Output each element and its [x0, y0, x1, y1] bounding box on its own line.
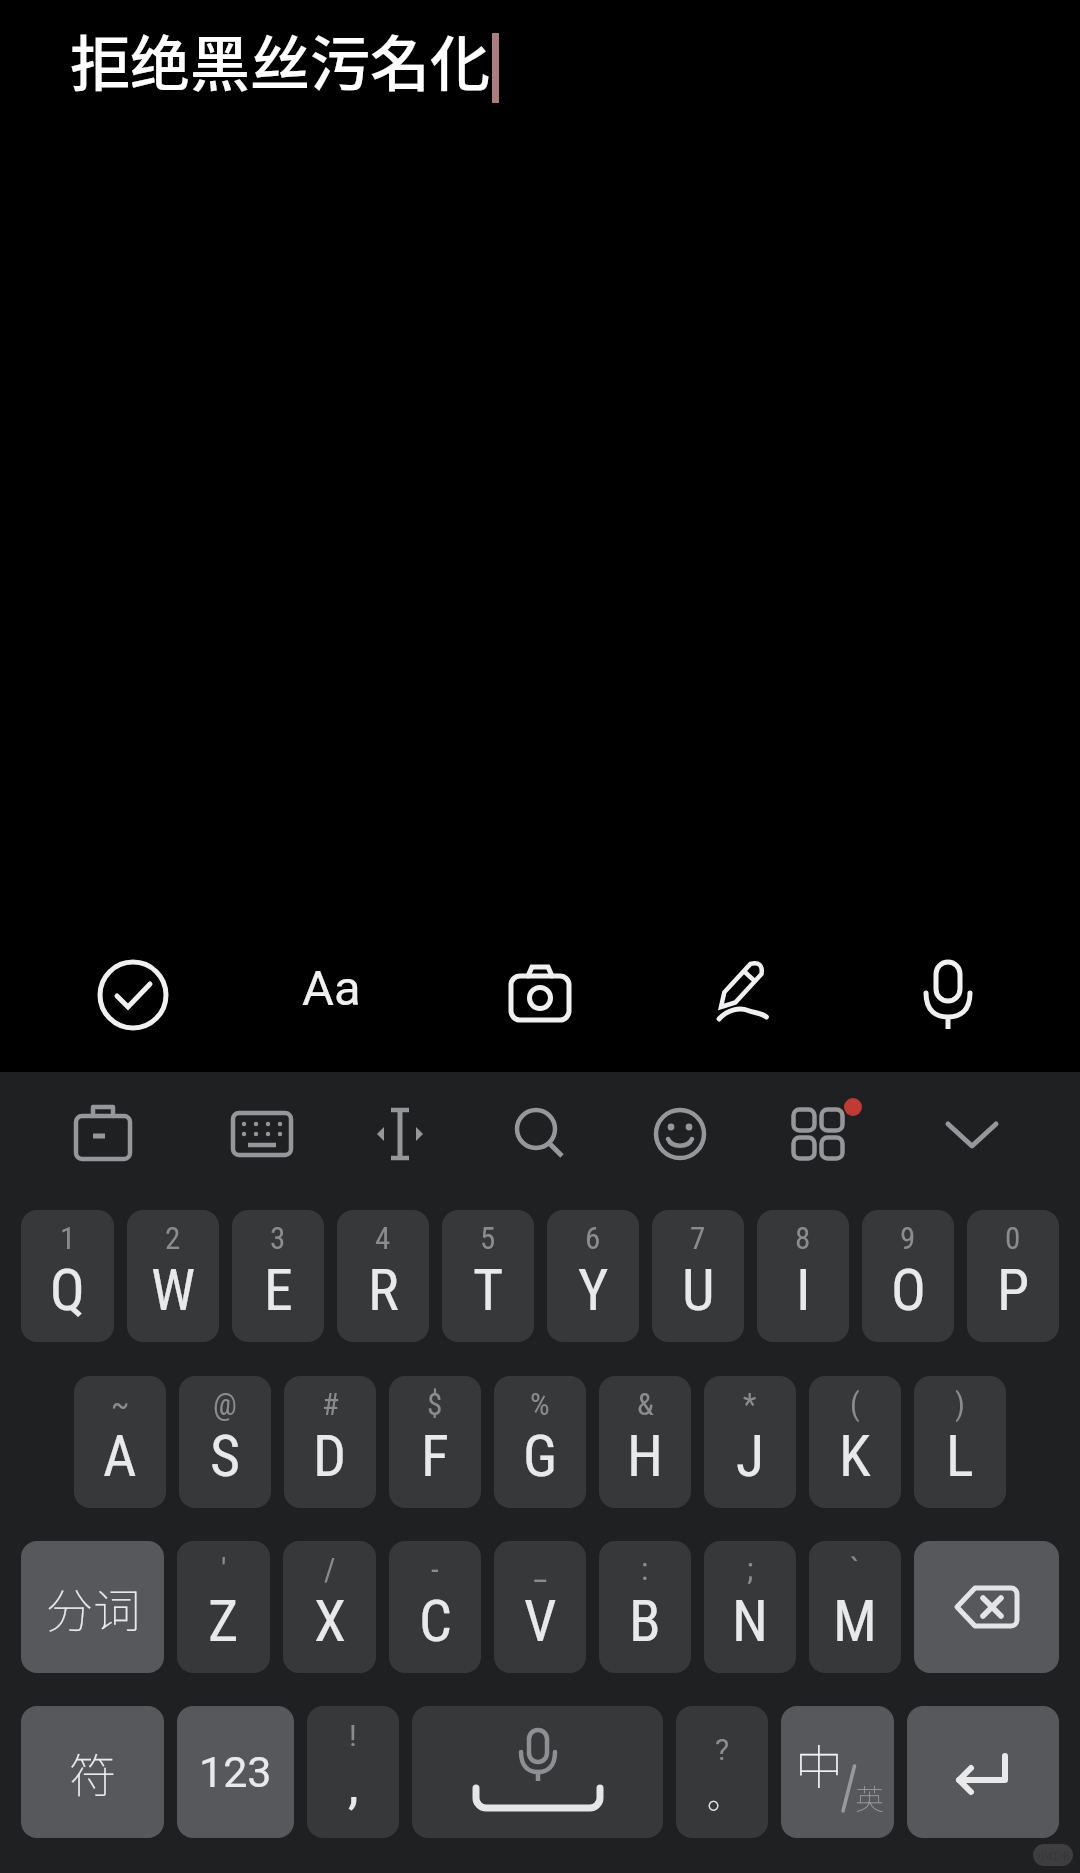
staticText: Q [50, 1256, 85, 1324]
button[interactable]: $ [389, 1376, 481, 1508]
button[interactable]: % [494, 1376, 586, 1508]
button[interactable]: 3 [232, 1210, 324, 1342]
button[interactable] [412, 1706, 663, 1838]
button[interactable]: ) [914, 1376, 1006, 1508]
staticText: 4 [375, 1220, 391, 1256]
staticText: V [524, 1587, 557, 1655]
staticText: / [324, 1551, 336, 1587]
staticText: ) [955, 1386, 965, 1422]
button[interactable] [485, 940, 595, 1050]
button[interactable]: - [389, 1541, 481, 1673]
staticText: ~ [111, 1386, 130, 1422]
staticText: 0 [1005, 1220, 1021, 1256]
button[interactable] [352, 1086, 448, 1182]
staticText: 符 [69, 1738, 116, 1806]
button[interactable] [492, 1086, 588, 1182]
staticText: : [641, 1551, 649, 1587]
staticText: Y [578, 1256, 609, 1324]
button[interactable]: : [599, 1541, 691, 1673]
staticText: M [833, 1587, 877, 1655]
button[interactable] [632, 1086, 728, 1182]
button[interactable]: ( [809, 1376, 901, 1508]
button[interactable]: 符 [21, 1706, 164, 1838]
staticText: 9 [900, 1220, 916, 1256]
staticText: % [530, 1386, 550, 1422]
staticText: * [743, 1386, 757, 1422]
staticText: 6 [585, 1220, 601, 1256]
staticText: , [348, 1753, 359, 1816]
button[interactable]: & [599, 1376, 691, 1508]
button[interactable]: @ [179, 1376, 271, 1508]
button[interactable]: 2 [127, 1210, 219, 1342]
button[interactable]: # [284, 1376, 376, 1508]
staticText: Aa [302, 960, 361, 1017]
button[interactable]: 中 [781, 1706, 894, 1838]
staticText: & [637, 1386, 654, 1422]
staticText: X [314, 1587, 346, 1655]
staticText: K [839, 1422, 871, 1490]
staticText: P [997, 1256, 1030, 1324]
button[interactable] [924, 1086, 1020, 1182]
button[interactable]: 8 [757, 1210, 849, 1342]
button[interactable]: _ [494, 1541, 586, 1673]
button[interactable]: 123 [177, 1706, 294, 1838]
button[interactable]: 1 [21, 1210, 114, 1342]
staticText: W [151, 1256, 196, 1324]
staticText: - [431, 1551, 439, 1587]
button[interactable]: 分词 [21, 1541, 164, 1673]
button[interactable]: 7 [652, 1210, 744, 1342]
staticText: G [523, 1422, 558, 1490]
staticText: ; [747, 1551, 754, 1587]
staticText: # [322, 1386, 339, 1422]
button[interactable]: ' [177, 1541, 270, 1673]
button[interactable] [214, 1086, 310, 1182]
button[interactable] [78, 940, 188, 1050]
staticText: R [368, 1256, 399, 1324]
staticText: H [627, 1422, 663, 1490]
staticText: ' [221, 1551, 227, 1587]
button[interactable]: * [704, 1376, 796, 1508]
button[interactable] [770, 1086, 866, 1182]
button[interactable]: 4 [337, 1210, 429, 1342]
staticText: 5 [480, 1220, 496, 1256]
staticText: J [736, 1422, 765, 1490]
button[interactable]: 5 [442, 1210, 534, 1342]
button[interactable] [55, 1086, 151, 1182]
staticText: 7 [690, 1220, 706, 1256]
staticText: ? [715, 1732, 730, 1767]
button[interactable] [907, 1706, 1059, 1838]
staticText: U [682, 1256, 715, 1324]
staticText: L [946, 1422, 974, 1490]
staticText: 。 [707, 1770, 741, 1819]
button[interactable] [914, 1541, 1059, 1673]
staticText: T [473, 1256, 504, 1324]
staticText: 123 [199, 1747, 272, 1797]
staticText: 8 [795, 1220, 811, 1256]
staticText: A [103, 1422, 137, 1490]
button[interactable]: ` [809, 1541, 901, 1673]
button[interactable]: ~ [74, 1376, 166, 1508]
staticText: 3 [270, 1220, 286, 1256]
button[interactable]: ? [676, 1706, 768, 1838]
button[interactable]: / [283, 1541, 376, 1673]
button[interactable]: 6 [547, 1210, 639, 1342]
button[interactable]: 0 [967, 1210, 1059, 1342]
staticText: 拒绝黑丝污名化 [70, 16, 490, 103]
button[interactable] [690, 940, 800, 1050]
staticText: ( [850, 1386, 860, 1422]
button[interactable] [893, 940, 1003, 1050]
staticText: C [419, 1587, 452, 1655]
staticText: 分词 [46, 1573, 140, 1641]
button[interactable]: ; [704, 1541, 796, 1673]
button[interactable]: ! [307, 1706, 399, 1838]
staticText: I [796, 1256, 811, 1324]
staticText: ` [850, 1551, 860, 1587]
staticText: $ [427, 1386, 443, 1422]
button[interactable] [280, 940, 390, 1050]
staticText: F [421, 1422, 449, 1490]
button[interactable]: 9 [862, 1210, 954, 1342]
staticText: Z [208, 1587, 239, 1655]
staticText: S [210, 1422, 241, 1490]
staticText: N [732, 1587, 768, 1655]
